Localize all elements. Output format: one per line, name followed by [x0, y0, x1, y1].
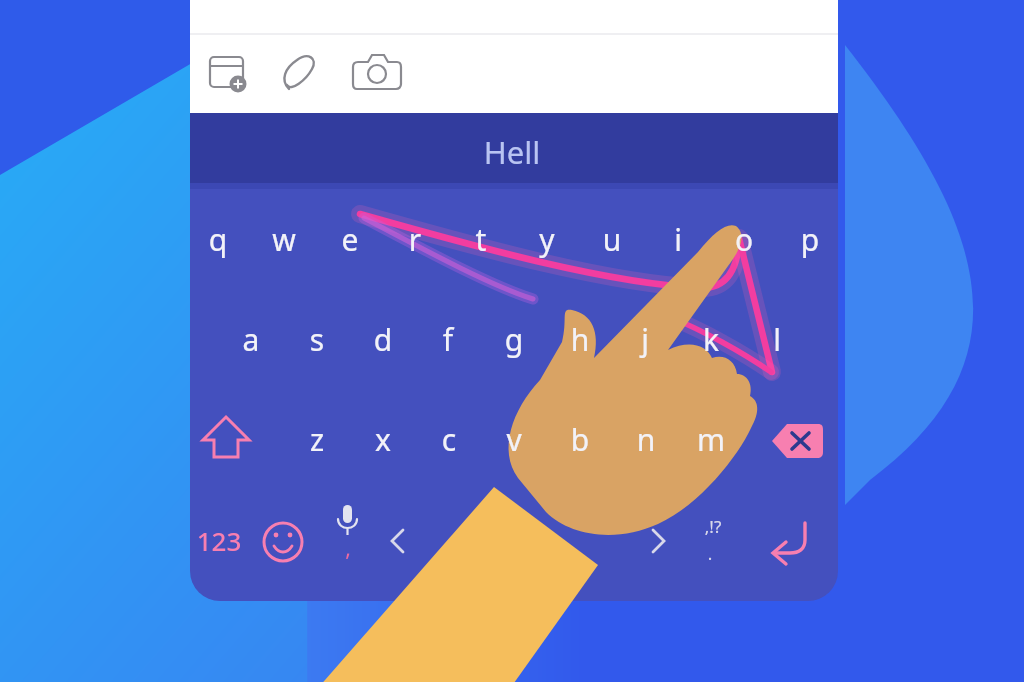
button[interactable]: c — [414, 419, 484, 463]
button[interactable]: f — [413, 319, 483, 363]
button[interactable]: o — [709, 219, 779, 263]
button[interactable]: New note — [204, 52, 250, 98]
button[interactable]: s — [282, 319, 352, 363]
button[interactable]: v — [479, 419, 549, 463]
button[interactable]: k — [676, 319, 746, 363]
button[interactable]: Cursor right — [644, 522, 684, 562]
button[interactable]: e — [315, 219, 385, 263]
button[interactable]: 123 — [184, 523, 254, 561]
button[interactable]: j — [610, 319, 680, 363]
button[interactable]: p — [775, 219, 845, 263]
button[interactable]: , — [313, 534, 383, 564]
button[interactable]: b — [545, 419, 615, 463]
button[interactable]: Backspace — [768, 416, 828, 466]
button[interactable]: ,!? — [678, 515, 748, 540]
button[interactable]: Camera — [354, 52, 400, 98]
button[interactable]: q — [183, 219, 253, 263]
button[interactable]: l — [742, 319, 812, 363]
button[interactable]: Hello — [477, 131, 547, 176]
button[interactable]: g — [479, 319, 549, 363]
button[interactable]: Emoji — [262, 520, 306, 564]
button[interactable]: a — [216, 319, 286, 363]
button[interactable]: i — [643, 219, 713, 263]
button[interactable]: w — [249, 219, 319, 263]
button[interactable]: y — [512, 219, 582, 263]
button[interactable]: u — [577, 219, 647, 263]
button[interactable]: . — [675, 542, 745, 567]
button[interactable]: z — [282, 419, 352, 463]
button[interactable]: m — [676, 419, 746, 463]
button[interactable]: Enter — [768, 518, 824, 570]
button[interactable]: h — [545, 319, 615, 363]
button[interactable]: x — [348, 419, 418, 463]
button[interactable]: Cursor left — [382, 522, 422, 562]
button[interactable]: d — [348, 319, 418, 363]
button[interactable]: Shift — [200, 410, 252, 466]
button[interactable]: n — [611, 419, 681, 463]
button[interactable]: t — [446, 219, 516, 263]
button[interactable]: Voice input — [326, 500, 370, 544]
button[interactable]: r — [380, 219, 450, 263]
button[interactable]: Space — [430, 512, 640, 572]
button[interactable]: Attach file — [278, 52, 324, 98]
